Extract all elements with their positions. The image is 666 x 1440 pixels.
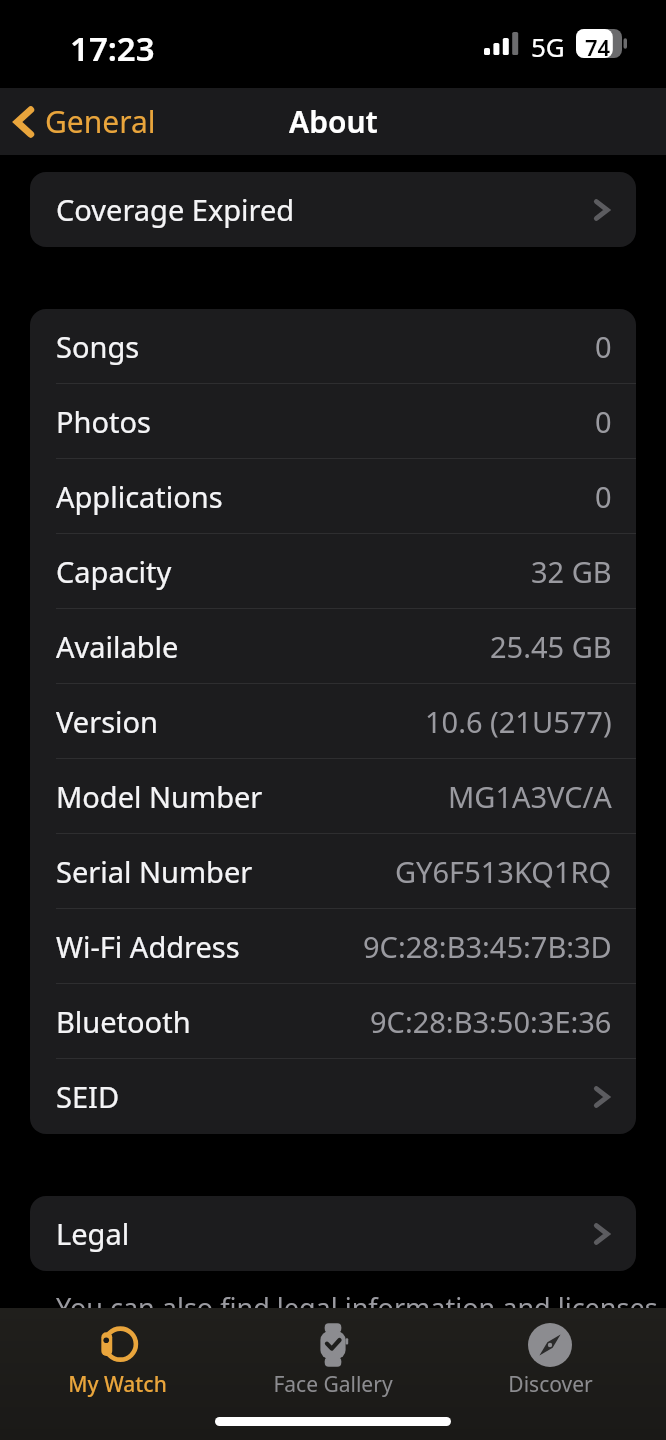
button[interactable]: General <box>0 95 168 148</box>
staticText: 25.45 GB <box>490 627 612 666</box>
button[interactable]: Coverage Expired <box>30 172 636 247</box>
staticText: General <box>45 101 156 142</box>
staticText: Songs <box>56 327 140 366</box>
button[interactable]: Model Number <box>30 759 636 834</box>
staticText: Version <box>56 702 158 741</box>
staticText: Bluetooth <box>56 1002 191 1041</box>
button[interactable]: Capacity <box>30 534 636 609</box>
button[interactable]: Bluetooth <box>30 984 636 1059</box>
staticText: Applications <box>56 477 223 516</box>
staticText: You can also find legal information and … <box>56 1289 666 1363</box>
staticText: Discover <box>508 1370 593 1399</box>
button[interactable]: SEID <box>30 1059 636 1134</box>
button[interactable]: Version <box>30 684 636 759</box>
staticText: Face Gallery <box>273 1370 393 1399</box>
staticText: 17:23 <box>70 26 155 71</box>
staticText: 0 <box>595 402 612 441</box>
staticText: 0 <box>595 477 612 516</box>
staticText: My Watch <box>68 1370 167 1399</box>
button[interactable]: Songs <box>30 309 636 384</box>
staticText: 32 GB <box>531 552 612 591</box>
staticText: 5G <box>531 29 565 64</box>
staticText: About <box>289 101 378 142</box>
staticText: MG1A3VC/A <box>448 777 612 816</box>
button[interactable]: Legal <box>30 1196 636 1271</box>
button[interactable]: Discover <box>450 1314 650 1399</box>
staticText: 9C:28:B3:50:3E:36 <box>370 1002 612 1041</box>
button[interactable]: Available <box>30 609 636 684</box>
staticText: Photos <box>56 402 151 441</box>
button[interactable]: Applications <box>30 459 636 534</box>
staticText: Legal <box>56 1214 130 1253</box>
staticText: SEID <box>56 1077 120 1116</box>
staticText: 10.6 (21U577) <box>425 702 612 741</box>
staticText: GY6F513KQ1RQ <box>395 852 612 891</box>
staticText: Coverage Expired <box>56 190 295 229</box>
button[interactable]: My Watch <box>17 1314 217 1399</box>
staticText: 0 <box>595 327 612 366</box>
staticText: Available <box>56 627 179 666</box>
button[interactable]: Wi-Fi Address <box>30 909 636 984</box>
staticText: Wi-Fi Address <box>56 927 240 966</box>
staticText: 9C:28:B3:45:7B:3D <box>363 927 612 966</box>
staticText: Capacity <box>56 552 172 591</box>
staticText: 74 <box>585 32 611 62</box>
staticText: Model Number <box>56 777 263 816</box>
button[interactable]: Photos <box>30 384 636 459</box>
button[interactable]: Serial Number <box>30 834 636 909</box>
staticText: Serial Number <box>56 852 253 891</box>
button[interactable]: Face Gallery <box>233 1314 433 1399</box>
